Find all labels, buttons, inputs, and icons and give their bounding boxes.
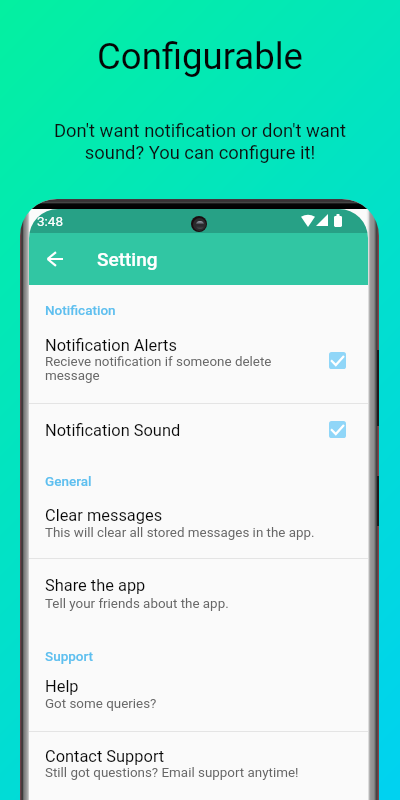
staticText: Clear messages (45, 506, 163, 525)
staticText: Configurable (97, 35, 303, 78)
button[interactable]: Notification Sound checkbox (329, 421, 346, 438)
staticText: Still got questions? Email support anyti… (45, 765, 299, 781)
button[interactable]: Share the app (29, 558, 368, 620)
staticText: Contact Support (45, 747, 165, 766)
staticText: Notification Sound (45, 421, 181, 440)
button[interactable]: Contact Support (29, 731, 368, 791)
button[interactable]: Back (36, 240, 74, 278)
button[interactable]: Notification Alerts checkbox (329, 352, 346, 369)
staticText: Got some queries? (45, 696, 157, 712)
button[interactable]: Notification Alerts (29, 326, 368, 403)
staticText: Don't want notification or don't want so… (54, 120, 346, 164)
button[interactable]: Clear messages (29, 497, 368, 557)
staticText: Setting (97, 248, 158, 270)
staticText: Notification Alerts (45, 336, 177, 355)
staticText: Recieve notification if someone delete m… (45, 354, 272, 383)
staticText: Share the app (45, 576, 146, 595)
staticText: This will clear all stored messages in t… (45, 525, 315, 541)
staticText: Notification (45, 302, 116, 318)
staticText: Help (45, 677, 79, 696)
staticText: General (45, 473, 92, 489)
button[interactable]: Notification Sound (29, 404, 368, 460)
button[interactable]: Help (29, 670, 368, 730)
staticText: Tell your friends about the app. (45, 596, 229, 612)
staticText: Support (45, 648, 94, 664)
staticText: 3:48 (37, 213, 64, 229)
